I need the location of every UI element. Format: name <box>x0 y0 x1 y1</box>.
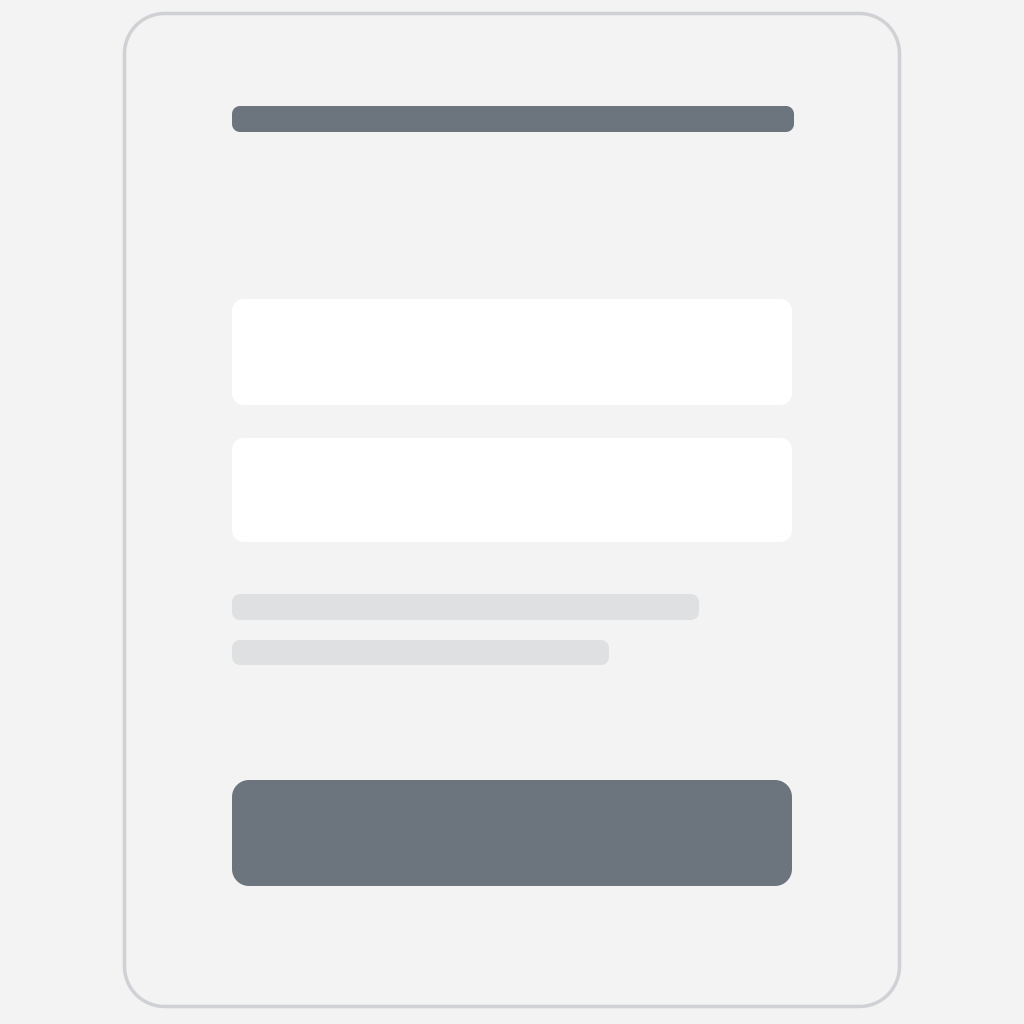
button[interactable]: Continue <box>232 780 792 886</box>
button[interactable]: Screen title <box>232 106 794 132</box>
